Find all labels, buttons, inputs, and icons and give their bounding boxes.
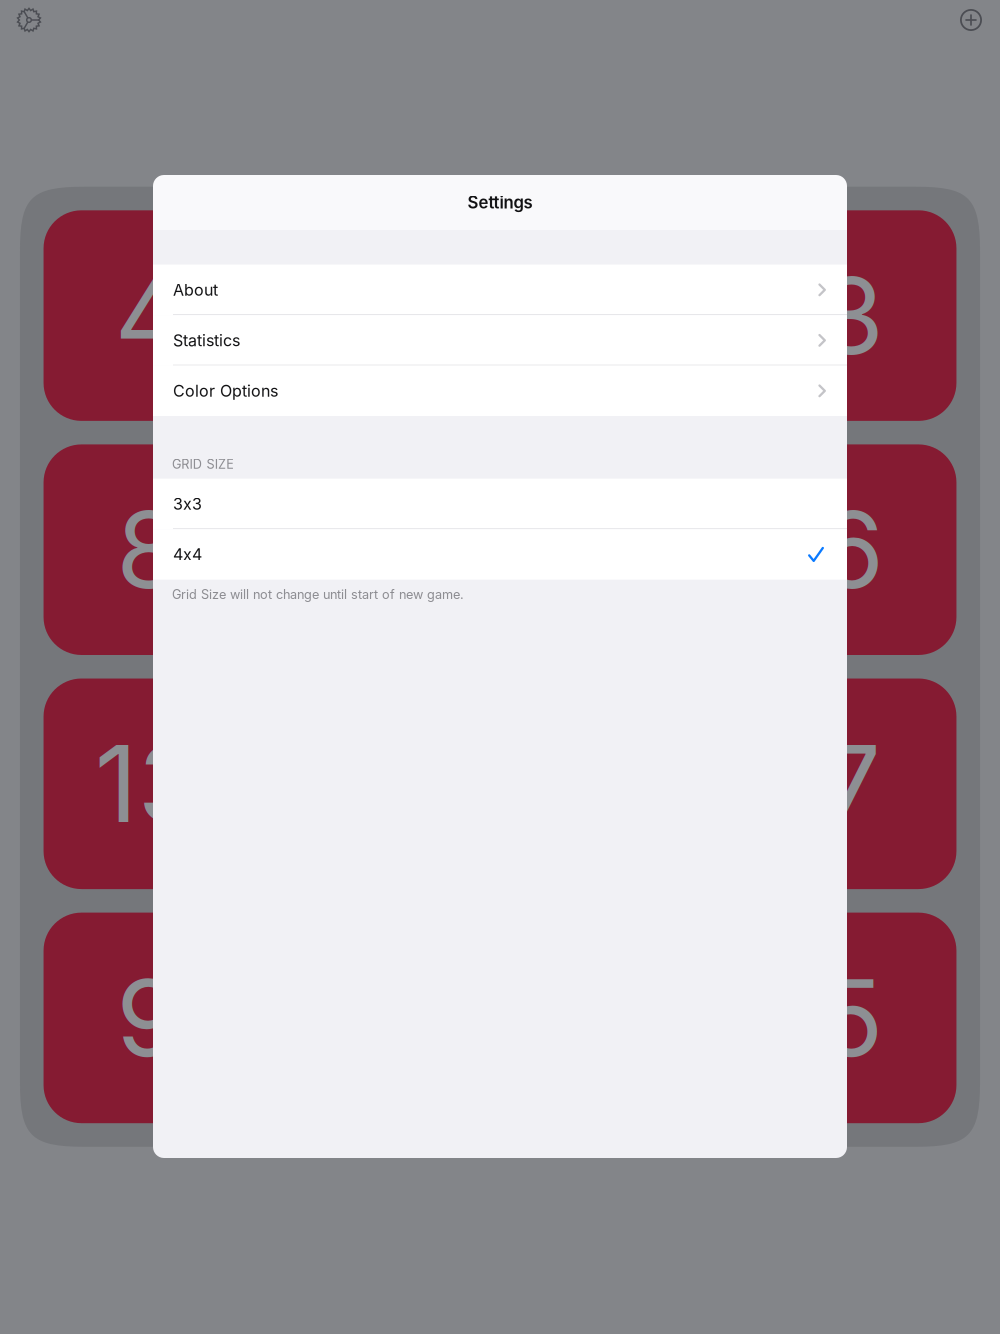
staticText: 4x4: [173, 545, 202, 564]
staticText: 3x3: [173, 494, 202, 514]
staticText: Settings: [467, 192, 532, 213]
staticText: 1: [361, 486, 404, 613]
staticText: 6: [819, 486, 884, 613]
staticText: 5: [819, 954, 883, 1082]
staticText: 3: [819, 252, 884, 379]
staticText: Grid Size will not change until start of…: [172, 587, 464, 602]
staticText: Statistics: [173, 331, 240, 350]
staticText: About: [173, 280, 218, 300]
staticText: 7: [821, 720, 881, 847]
button[interactable]: Statistics: [153, 315, 847, 366]
staticText: 2: [585, 252, 649, 379]
staticText: 9: [116, 954, 181, 1082]
staticText: 8: [116, 486, 181, 613]
staticText: 4: [115, 252, 183, 379]
button[interactable]: 3x3: [153, 479, 847, 529]
staticText: 10: [562, 486, 671, 613]
staticText: 12: [329, 252, 436, 379]
staticText: GRID SIZE: [172, 456, 234, 472]
staticText: 13: [95, 720, 203, 847]
staticText: Color Options: [173, 381, 278, 401]
button[interactable]: New Game: [951, 0, 991, 40]
button[interactable]: Settings: [9, 0, 49, 40]
button[interactable]: About: [153, 265, 847, 315]
button[interactable]: 4x4: [153, 529, 847, 580]
button[interactable]: Color Options: [153, 366, 847, 416]
